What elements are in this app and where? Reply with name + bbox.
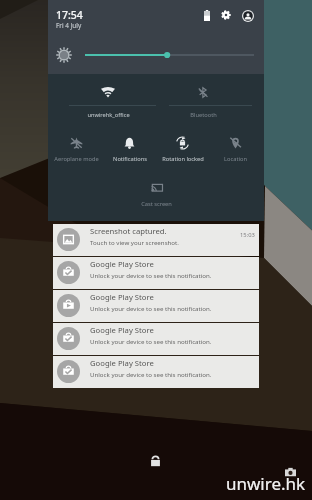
staticText: Cast screen [141, 200, 172, 208]
button[interactable]: Bluetooth [156, 80, 250, 122]
staticText: 17:54 [56, 8, 83, 22]
staticText: Unlock your device to see this notificat… [90, 370, 212, 378]
button[interactable]: Google Play Store [53, 323, 259, 355]
button[interactable]: Location [209, 137, 262, 163]
staticText: Notifications [113, 155, 147, 163]
staticText: Google Play Store [90, 259, 154, 269]
staticText: Fri 4 July [56, 21, 82, 30]
button[interactable]: Aeroplane mode [50, 137, 103, 163]
staticText: Google Play Store [90, 292, 154, 302]
button[interactable]: Settings [221, 10, 231, 20]
button[interactable]: User profile [242, 10, 254, 22]
button[interactable]: Notifications [103, 137, 156, 163]
button[interactable]: Google Play Store [53, 356, 259, 388]
button[interactable]: unwirehk_office [61, 80, 155, 122]
button[interactable]: Google Play Store [53, 257, 259, 289]
button[interactable]: Rotation locked [156, 137, 209, 163]
button[interactable]: Screenshot captured. [53, 224, 259, 256]
button[interactable]: Cast screen [130, 182, 183, 208]
staticText: 15:03 [240, 231, 255, 239]
button[interactable]: Locked [149, 455, 162, 468]
staticText: Google Play Store [90, 358, 154, 368]
staticText: unwire.hk [226, 472, 306, 495]
button[interactable]: Battery [204, 10, 210, 21]
staticText: Unlock your device to see this notificat… [90, 337, 212, 345]
staticText: Touch to view your screenshot. [90, 238, 179, 246]
staticText: Rotation locked [162, 155, 204, 163]
staticText: Screenshot captured. [90, 226, 167, 236]
staticText: Unlock your device to see this notificat… [90, 304, 212, 312]
staticText: Location [224, 155, 247, 163]
button[interactable]: Google Play Store [53, 290, 259, 322]
staticText: Unlock your device to see this notificat… [90, 271, 212, 279]
button[interactable]: Brightness [85, 48, 254, 62]
staticText: unwirehk_office [87, 111, 130, 119]
staticText: Bluetooth [190, 111, 217, 119]
staticText: Aeroplane mode [54, 155, 99, 163]
staticText: Google Play Store [90, 325, 154, 335]
